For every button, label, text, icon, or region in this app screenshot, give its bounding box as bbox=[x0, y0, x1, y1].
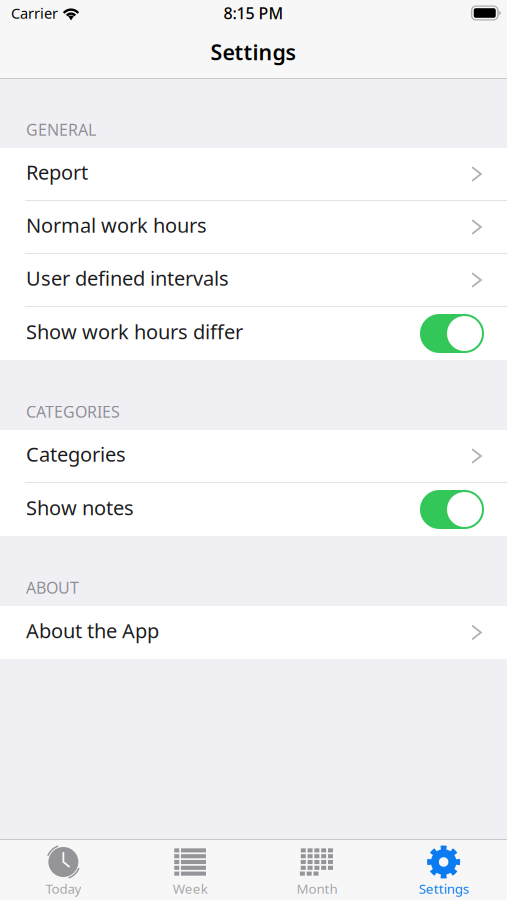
staticText: CATEGORIES bbox=[26, 401, 120, 422]
staticText: Report bbox=[26, 159, 88, 185]
staticText: Settings bbox=[210, 38, 296, 66]
staticText: Normal work hours bbox=[26, 212, 207, 238]
button[interactable]: About the App bbox=[0, 606, 507, 659]
staticText: Categories bbox=[26, 441, 126, 467]
button[interactable]: Show work hours differ bbox=[0, 307, 507, 360]
staticText: Show notes bbox=[26, 494, 134, 521]
staticText: Week bbox=[173, 880, 208, 897]
button[interactable]: Report bbox=[0, 148, 507, 201]
staticText: About the App bbox=[26, 617, 159, 644]
staticText: Show work hours differ bbox=[26, 318, 243, 345]
staticText: Carrier bbox=[11, 3, 58, 23]
button[interactable]: Week bbox=[127, 840, 254, 900]
button[interactable]: Show notes bbox=[0, 483, 507, 536]
button[interactable]: Normal work hours bbox=[0, 201, 507, 254]
staticText: GENERAL bbox=[26, 119, 96, 140]
staticText: User defined intervals bbox=[26, 265, 229, 291]
staticText: Settings bbox=[419, 880, 469, 897]
button[interactable]: Categories bbox=[0, 430, 507, 483]
staticText: Today bbox=[45, 880, 81, 897]
button[interactable]: Today bbox=[0, 840, 127, 900]
staticText: Month bbox=[296, 880, 337, 897]
staticText: 8:15 PM bbox=[223, 2, 283, 24]
staticText: ABOUT bbox=[26, 577, 79, 598]
button[interactable]: Month bbox=[253, 840, 380, 900]
button[interactable]: Settings bbox=[380, 840, 507, 900]
button[interactable]: User defined intervals bbox=[0, 254, 507, 307]
